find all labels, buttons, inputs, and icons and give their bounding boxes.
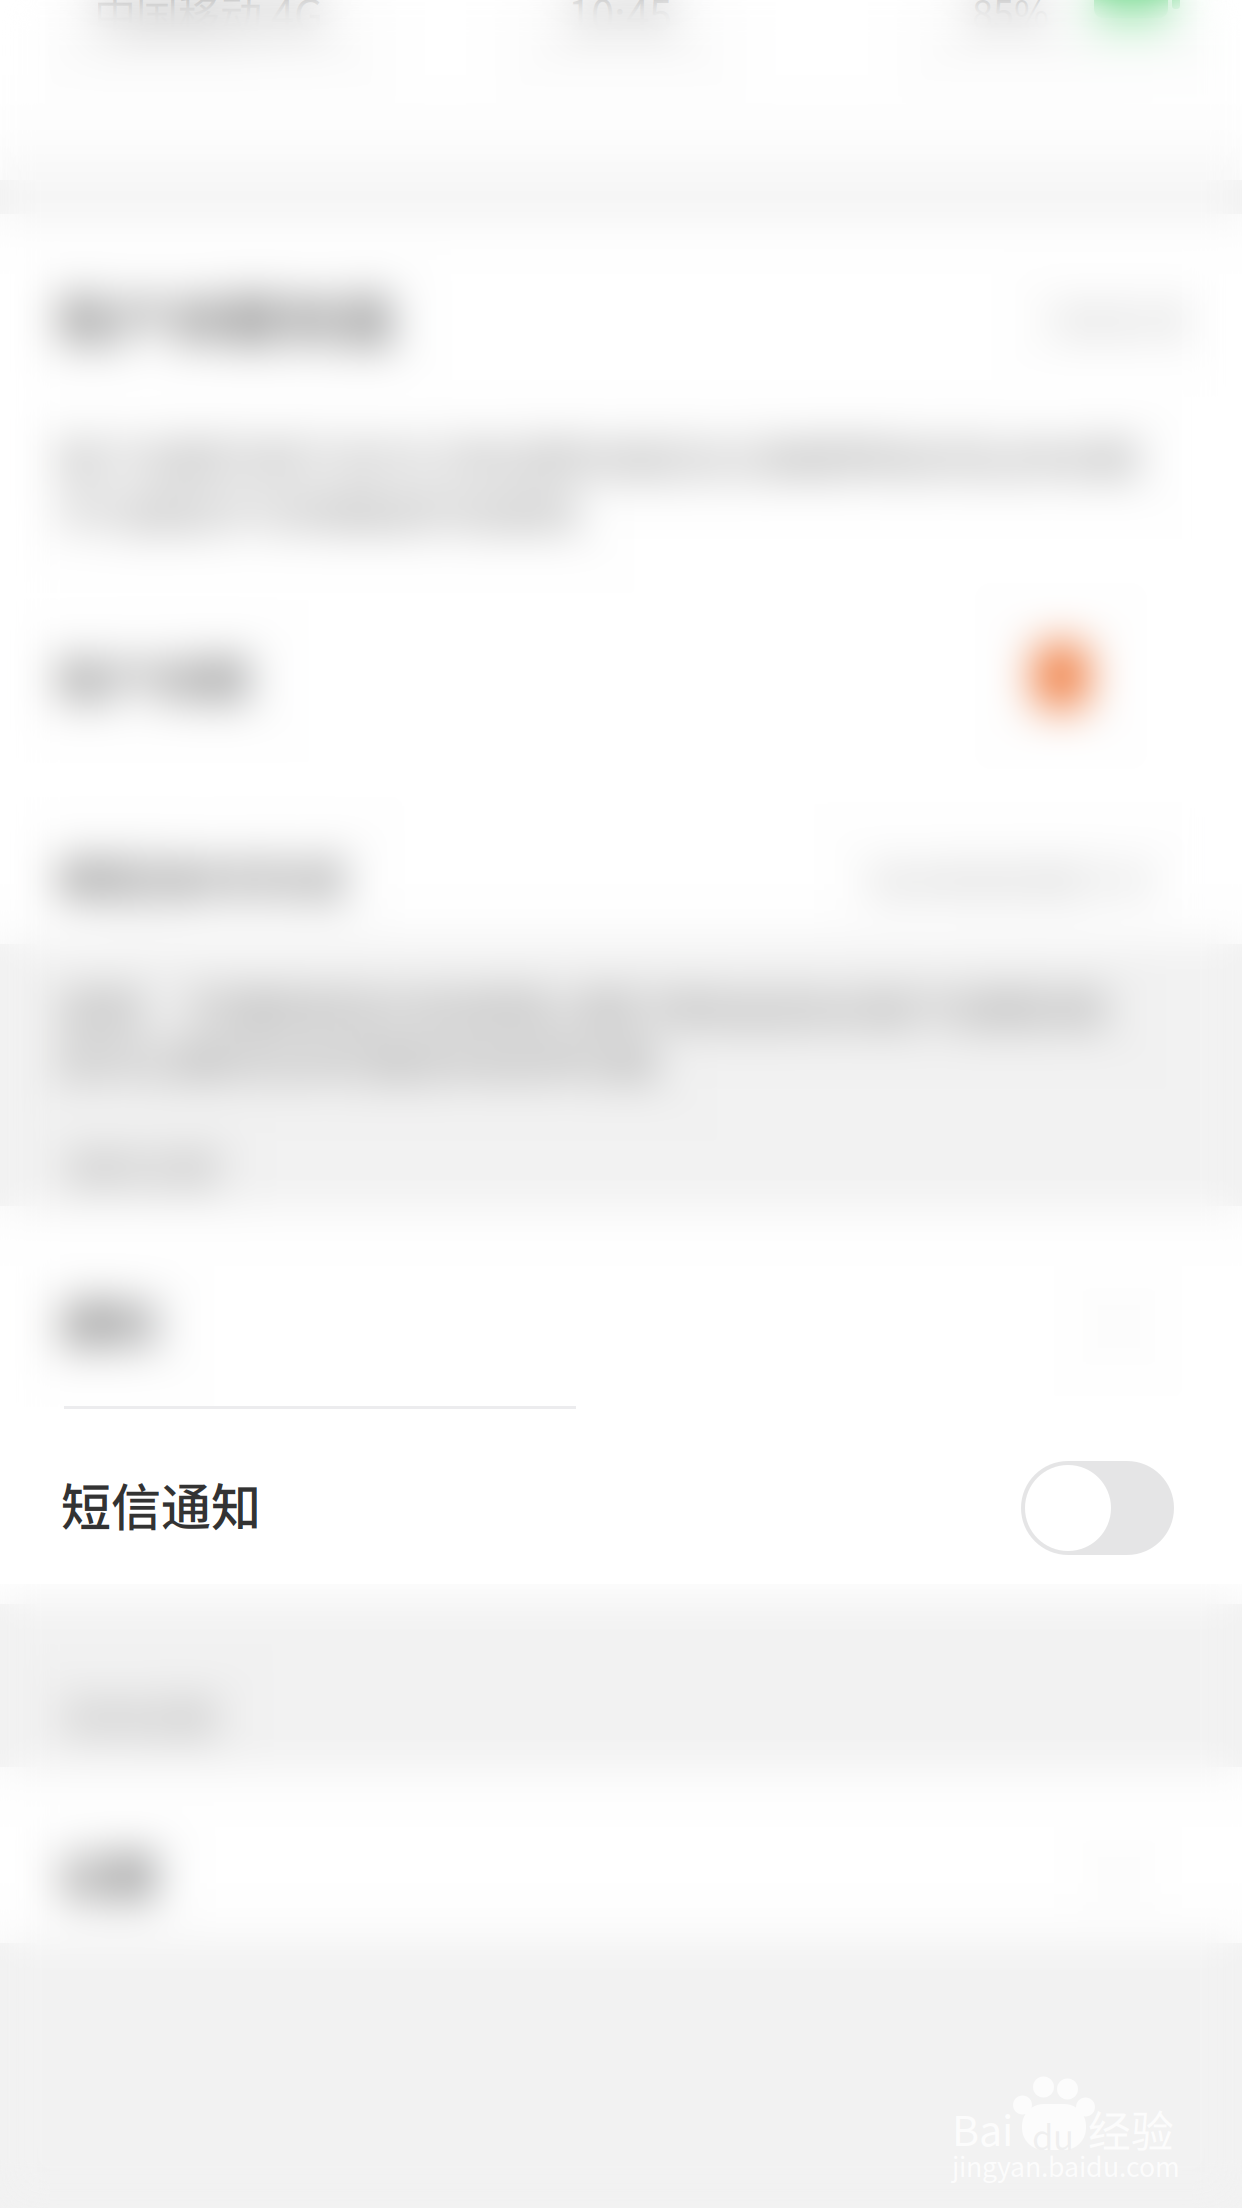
staticText: jingyan.baidu.com bbox=[952, 2146, 1180, 2185]
staticText: 85% bbox=[972, 0, 1049, 39]
staticText: 说明： 开通免密支付后单笔小额订单会自动从账户余额扣款 bbox=[58, 978, 1107, 1036]
staticText: 通知设置 bbox=[66, 1139, 218, 1194]
staticText: 通知 bbox=[58, 1285, 158, 1357]
staticText: 经验 bbox=[1088, 2098, 1174, 2160]
staticText: du bbox=[1032, 2110, 1074, 2160]
staticText: Bai bbox=[952, 2098, 1013, 2158]
staticText: 您可以随时在本页面关闭该项功能 bbox=[58, 1030, 658, 1088]
button[interactable]: 短信通知 bbox=[0, 1432, 1242, 1584]
staticText: 不可提现不可转赠请尽快使用 bbox=[58, 482, 578, 540]
staticText: 10:45 bbox=[568, 0, 672, 43]
staticText: 短信通知 bbox=[61, 1468, 261, 1540]
staticText: 账户余额可用于支付订单话费充值及生活缴费等各项业务余额 bbox=[58, 428, 1138, 486]
staticText: 账户余额充值 bbox=[58, 276, 394, 357]
staticText: 中国移动 4G bbox=[94, 0, 323, 43]
staticText: 系统设置 bbox=[63, 1688, 215, 1743]
staticText: 绑定支付方式 bbox=[58, 842, 346, 911]
staticText: 账户余额 bbox=[58, 642, 250, 711]
staticText: 设置 bbox=[58, 1838, 158, 1910]
